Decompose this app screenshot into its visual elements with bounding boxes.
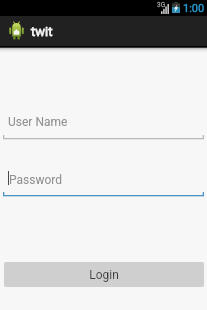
button[interactable]: User Name — [0, 114, 207, 144]
button[interactable]: Password — [0, 170, 207, 201]
staticText: 3G — [157, 1, 166, 9]
staticText: twit — [31, 24, 53, 39]
staticText: Password — [9, 173, 63, 187]
staticText: Login — [89, 268, 119, 282]
button[interactable]: Login — [4, 262, 204, 287]
staticText: 1:00 — [183, 2, 205, 15]
staticText: User Name — [8, 115, 68, 129]
